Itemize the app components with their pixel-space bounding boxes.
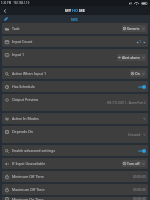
button[interactable]: Edit (3, 16, 9, 22)
button[interactable]: Active When Input 1 (2, 68, 148, 79)
staticText: Maximum Off Time (12, 187, 45, 192)
staticText: 00:00:00 (133, 197, 146, 200)
staticText: Task (12, 26, 20, 31)
staticText: If Input Unavailable (12, 161, 46, 166)
staticText: Minimum Off Time (12, 174, 44, 179)
button[interactable]: Turn off (122, 160, 146, 167)
staticText: 00:00:00 (133, 175, 146, 179)
button[interactable]: On (130, 70, 146, 77)
button[interactable]: Has Schedule (2, 81, 148, 92)
staticText: HR: CTL 0:00 1 - Alarm Part 2 (107, 101, 146, 105)
staticText: 1:32 PM 192.168.1.10 (1, 1, 30, 5)
staticText: Minimum On Time (12, 197, 44, 200)
staticText: Unused (128, 132, 141, 137)
button[interactable]: Input Count (2, 36, 148, 47)
staticText: 00:00:00 (133, 188, 146, 192)
staticText: Enable advanced settings (12, 148, 55, 153)
button[interactable]: Enable advanced settings (2, 145, 148, 156)
staticText: NVC (71, 17, 79, 22)
staticText: Input Count (12, 39, 33, 44)
button[interactable]: Task (2, 23, 148, 34)
button[interactable]: Active In Modes (2, 113, 148, 124)
staticText: Active When Input 1 (12, 71, 46, 76)
button[interactable]: Depends On (2, 126, 148, 143)
staticText: Output Preview (12, 97, 39, 102)
staticText: Input 1 (12, 52, 25, 57)
button[interactable]: Minimum Off Time (2, 171, 148, 182)
button[interactable]: Decrease (135, 40, 139, 44)
button[interactable]: If Input Unavailable (2, 158, 148, 169)
staticText: 1 (139, 39, 142, 44)
button[interactable]: Toggle (138, 85, 146, 89)
staticText: Generic (127, 26, 140, 31)
button[interactable]: Back (0, 6, 9, 15)
staticText: On (135, 71, 140, 76)
button[interactable]: Output Preview (2, 94, 148, 111)
button[interactable]: Alert alarm (117, 54, 146, 61)
button[interactable]: Generic (122, 25, 146, 32)
staticText: HO (72, 8, 79, 13)
button[interactable]: Increase (142, 40, 146, 44)
staticText: Active In Modes (12, 116, 39, 121)
staticText: Turn off (127, 161, 140, 166)
staticText: Has Schedule (12, 84, 35, 89)
button[interactable]: Minimum On Time (2, 197, 148, 200)
staticText: MY (65, 8, 72, 13)
button[interactable]: Input 1 (2, 49, 148, 66)
staticText: Depends On (12, 129, 34, 134)
button[interactable]: Maximum Off Time (2, 184, 148, 195)
staticText: ME (79, 8, 85, 13)
button[interactable]: Toggle (138, 149, 146, 153)
staticText: Alert alarm (122, 55, 140, 60)
